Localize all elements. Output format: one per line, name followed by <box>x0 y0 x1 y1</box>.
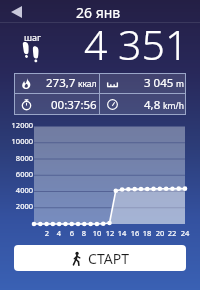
staticText: 8 <box>76 228 92 238</box>
staticText: 6 <box>64 228 80 238</box>
staticText: 20 <box>152 228 168 238</box>
staticText: km/h <box>163 100 184 112</box>
staticText: 26 янв <box>76 3 121 22</box>
staticText: 2000 <box>0 201 33 211</box>
button[interactable]: Previous day <box>0 0 32 23</box>
staticText: СТАРТ <box>88 249 129 268</box>
staticText: 8000 <box>0 153 33 163</box>
staticText: 4000 <box>0 185 33 195</box>
staticText: 10000 <box>0 136 33 146</box>
staticText: 14 <box>114 228 130 238</box>
staticText: 18 <box>139 228 155 238</box>
staticText: 4 <box>51 228 67 238</box>
staticText: m <box>176 78 184 90</box>
staticText: ккал <box>78 78 97 90</box>
staticText: 10 <box>89 228 105 238</box>
staticText: 16 <box>127 228 143 238</box>
staticText: 12000 <box>0 120 33 130</box>
staticText: 4,8 <box>144 97 161 113</box>
staticText: 6000 <box>0 169 33 179</box>
staticText: 3 045 <box>144 75 174 91</box>
staticText: 2 <box>39 228 55 238</box>
staticText: 12 <box>102 228 118 238</box>
staticText: 4 351 <box>84 16 189 62</box>
staticText: 22 <box>164 228 180 238</box>
staticText: 00:37:56 <box>51 97 97 113</box>
button[interactable]: СТАРТ <box>14 245 186 271</box>
staticText: шаг <box>24 31 41 43</box>
staticText: 273,7 <box>46 75 76 91</box>
staticText: 24 <box>177 228 193 238</box>
